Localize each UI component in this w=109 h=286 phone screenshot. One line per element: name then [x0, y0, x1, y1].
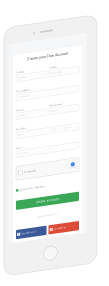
button[interactable]: G	[48, 232, 79, 241]
staticText: Sign up with Facebook	[21, 235, 36, 237]
staticText: Confirm Password	[49, 111, 63, 113]
staticText: Your Name	[18, 79, 26, 81]
staticText: you@domain.com	[18, 98, 30, 100]
staticText: G	[50, 235, 52, 238]
staticText: Date of Birth	[16, 130, 26, 132]
staticText: First Name	[16, 74, 24, 76]
staticText: Your e-mail address	[16, 93, 31, 95]
staticText: f	[18, 235, 19, 238]
button[interactable]: f	[16, 232, 46, 241]
staticText: Month	[18, 136, 23, 138]
staticText: Select Country	[18, 155, 30, 157]
button[interactable]: Create Account	[16, 202, 79, 212]
staticText: Country	[16, 149, 23, 151]
staticText: Sign up with Google	[54, 235, 66, 237]
staticText: Password	[16, 111, 24, 113]
staticText: Create Account	[35, 205, 59, 209]
staticText: password	[18, 117, 26, 119]
